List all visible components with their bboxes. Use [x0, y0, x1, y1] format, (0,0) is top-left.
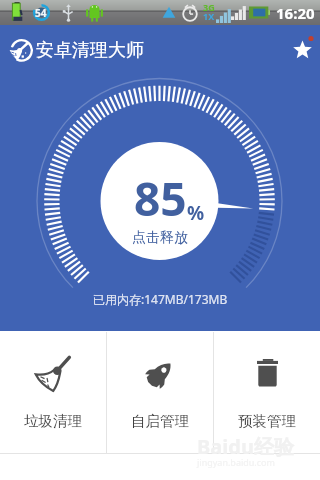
staticText: 3G	[203, 1, 215, 13]
staticText: 1X	[203, 10, 215, 22]
staticText: Baidu经验	[197, 433, 294, 460]
staticText: jingyan.baidu.com	[197, 456, 275, 468]
staticText: 安卓清理大师	[36, 39, 144, 62]
staticText: 垃圾清理	[24, 412, 82, 430]
staticText: 54	[35, 6, 47, 20]
staticText: 已用内存:147MB/173MB	[93, 291, 228, 307]
button[interactable]: Favorite	[287, 34, 319, 66]
staticText: 自启管理	[131, 412, 189, 430]
button[interactable]: 85	[0, 0, 320, 480]
button[interactable]: 垃圾清理	[0, 332, 106, 453]
button[interactable]: 预装管理	[214, 332, 320, 453]
staticText: 预装管理	[238, 412, 296, 430]
staticText: %	[187, 200, 205, 226]
staticText: 16:20	[276, 3, 315, 23]
button[interactable]: 自启管理	[107, 332, 213, 453]
staticText: 85	[134, 167, 187, 230]
staticText: 点击释放	[132, 229, 188, 247]
